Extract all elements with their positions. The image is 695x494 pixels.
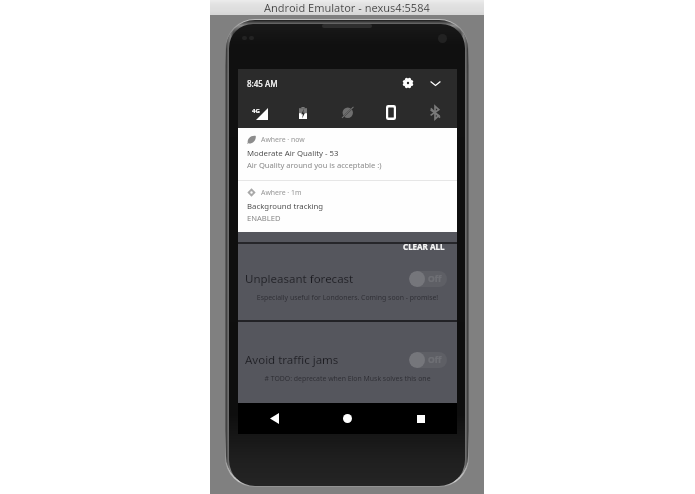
staticText: Background tracking [247,201,324,212]
staticText: Awhere · now [261,135,305,144]
staticText: 8:45 AM [247,78,278,89]
button[interactable]: CLEAR ALL [403,241,445,250]
staticText: Unpleasant forecast [245,271,354,287]
staticText: 4G [252,107,260,115]
button[interactable]: Avoid traffic jams [238,322,457,402]
staticText: Off [428,354,442,366]
button[interactable]: Awhere · now [238,128,457,180]
button[interactable]: Mobile data 4G [238,97,281,128]
button[interactable]: Awhere · 1m [238,181,457,232]
staticText: Air Quality around you is acceptable :) [247,160,382,170]
button[interactable]: Unpleasant forecast [238,253,457,320]
button[interactable]: Toggle off [409,352,447,368]
staticText: Avoid traffic jams [245,352,339,368]
staticText: Awhere · 1m [261,188,302,197]
staticText: ENABLED [247,213,281,223]
button[interactable]: Collapse quick settings [425,73,445,93]
button[interactable]: Bluetooth off [413,97,457,128]
staticText: Especially useful for Londoners. Coming … [238,293,457,302]
button[interactable]: Settings [398,73,418,93]
button[interactable]: Battery charging [281,97,325,128]
staticText: Moderate Air Quality - 53 [247,148,339,159]
button[interactable]: Recent apps [384,403,457,434]
staticText: Off [428,273,442,285]
button[interactable]: Toggle off [409,271,447,287]
button[interactable]: Auto rotate [369,97,413,128]
button[interactable]: Home [311,403,384,434]
button[interactable]: Back [238,403,311,434]
staticText: CLEAR ALL [403,241,445,250]
staticText: # TODO: deprecate when Elon Musk solves … [238,374,457,383]
button[interactable]: Location off [325,97,369,128]
staticText: Android Emulator - nexus4:5584 [264,0,430,15]
